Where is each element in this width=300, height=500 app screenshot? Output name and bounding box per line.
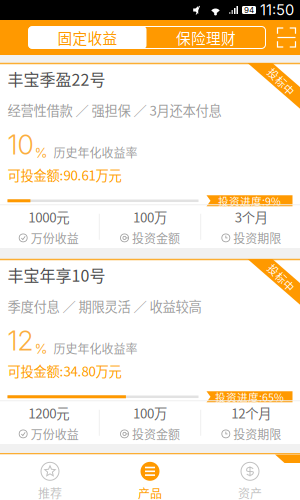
staticText: 投资进度:9%: [218, 193, 281, 208]
staticText: 丰宝年享10号: [7, 263, 105, 286]
staticText: 经营性借款 ／ 强担保 ／ 3月还本付息: [7, 100, 221, 120]
staticText: 万份收益: [31, 229, 79, 247]
button[interactable]: Scan: [273, 24, 299, 51]
staticText: 投资期限: [233, 229, 281, 247]
staticText: 1200元: [28, 403, 69, 422]
staticText: 100万: [133, 207, 167, 226]
staticText: 资产: [238, 484, 262, 500]
staticText: 产品: [138, 484, 162, 500]
button[interactable]: 丰宝年享10号: [0, 259, 300, 444]
staticText: 投标中: [265, 74, 298, 89]
staticText: 投标中: [265, 270, 298, 285]
staticText: 3个月: [235, 207, 268, 226]
staticText: %: [34, 341, 47, 357]
staticText: 100万: [133, 403, 167, 422]
button[interactable]: 产品: [100, 463, 200, 500]
staticText: 94: [244, 5, 254, 15]
staticText: 丰宝季盈22号: [7, 67, 105, 90]
staticText: 11:50: [260, 1, 294, 19]
staticText: 投资期限: [233, 425, 281, 443]
staticText: 投资进度:65%: [215, 389, 284, 404]
staticText: 投资金额: [132, 229, 180, 247]
staticText: %: [34, 145, 47, 161]
button[interactable]: 推荐: [0, 463, 100, 500]
staticText: 12: [7, 325, 33, 357]
staticText: 可投金额:34.80万元: [7, 361, 121, 380]
button[interactable]: 资产: [200, 463, 300, 500]
staticText: 1000元: [28, 207, 69, 226]
button[interactable]: 丰宝季盈22号: [0, 63, 300, 248]
staticText: 12个月: [231, 403, 271, 422]
staticText: 10: [7, 129, 33, 161]
staticText: 历史年化收益率: [53, 340, 137, 357]
staticText: 历史年化收益率: [53, 144, 137, 161]
staticText: 固定收益: [57, 27, 117, 48]
staticText: 万份收益: [31, 425, 79, 443]
button[interactable]: 保险理财: [146, 26, 265, 48]
staticText: 保险理财: [176, 27, 236, 48]
staticText: 推荐: [38, 484, 62, 500]
staticText: 投资金额: [132, 425, 180, 443]
button[interactable]: 固定收益: [28, 26, 146, 48]
staticText: 可投金额:90.61万元: [7, 165, 121, 184]
staticText: 季度付息 ／ 期限灵活 ／ 收益较高: [7, 296, 201, 316]
